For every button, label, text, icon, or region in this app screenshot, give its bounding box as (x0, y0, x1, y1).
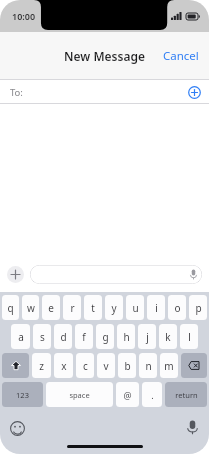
staticText: c (83, 359, 88, 373)
button[interactable]: j (138, 324, 156, 349)
button[interactable]: r (63, 295, 81, 320)
button[interactable]: Emoji (10, 421, 25, 436)
staticText: h (123, 330, 130, 344)
staticText: x (61, 359, 67, 373)
button[interactable]: i (147, 295, 165, 320)
button[interactable]: Add attachment (7, 266, 24, 283)
staticText: d (60, 330, 67, 344)
button[interactable]: z (32, 353, 51, 378)
button[interactable]: 123 (2, 382, 43, 407)
staticText: v (103, 359, 109, 373)
staticText: a (18, 330, 24, 344)
staticText: New Message (64, 48, 145, 64)
staticText: s (40, 330, 45, 344)
staticText: r (70, 301, 75, 315)
staticText: o (174, 301, 181, 315)
staticText: t (91, 301, 95, 315)
button[interactable]: v (97, 353, 115, 378)
staticText: 10:00 (12, 10, 36, 22)
staticText: n (145, 359, 152, 373)
button[interactable]: x (54, 353, 73, 378)
button[interactable]: w (22, 295, 39, 320)
staticText: m (164, 359, 174, 373)
staticText: 123 (16, 390, 29, 400)
button[interactable]: b (118, 353, 136, 378)
button[interactable]: o (168, 295, 186, 320)
button[interactable]: e (42, 295, 60, 320)
button[interactable]: c (76, 353, 94, 378)
staticText: z (39, 359, 44, 373)
button[interactable]: l (180, 324, 198, 349)
button[interactable]: h (117, 324, 135, 349)
staticText: To: (10, 86, 23, 99)
button[interactable]: f (75, 324, 93, 349)
staticText: @ (123, 389, 132, 401)
button[interactable]: n (139, 353, 157, 378)
staticText: q (7, 301, 14, 315)
staticText: u (132, 301, 139, 315)
staticText: w (27, 301, 35, 315)
button[interactable]: Delete (181, 353, 207, 378)
staticText: l (188, 330, 191, 344)
button[interactable]: y (105, 295, 123, 320)
button[interactable]: return (165, 382, 207, 407)
button[interactable]: . (142, 382, 162, 407)
button[interactable]: a (11, 324, 30, 349)
staticText: return (175, 390, 198, 400)
button[interactable]: Cancel (153, 40, 209, 72)
staticText: e (48, 301, 54, 315)
button[interactable]: @ (116, 382, 139, 407)
button[interactable]: m (160, 353, 178, 378)
button[interactable]: u (126, 295, 144, 320)
button[interactable]: Dictate (30, 265, 202, 284)
staticText: Cancel (163, 48, 199, 64)
button[interactable]: To: (0, 80, 209, 104)
staticText: space (69, 390, 90, 400)
staticText: y (111, 301, 117, 315)
staticText: k (165, 330, 171, 344)
staticText: . (151, 389, 154, 401)
button[interactable]: Dictate (187, 420, 198, 435)
staticText: j (146, 330, 149, 344)
button[interactable]: Add contact (188, 86, 201, 99)
button[interactable]: Shift (2, 353, 29, 378)
staticText: b (124, 359, 131, 373)
button[interactable]: d (54, 324, 72, 349)
staticText: g (102, 330, 109, 344)
button[interactable]: t (84, 295, 102, 320)
button[interactable]: k (159, 324, 177, 349)
button[interactable]: p (189, 295, 207, 320)
staticText: p (195, 301, 202, 315)
button[interactable]: q (2, 295, 19, 320)
button[interactable]: g (96, 324, 114, 349)
staticText: f (82, 330, 86, 344)
button[interactable]: s (33, 324, 51, 349)
staticText: i (155, 301, 158, 315)
other: Dictate (190, 269, 197, 280)
button[interactable]: space (46, 382, 113, 407)
